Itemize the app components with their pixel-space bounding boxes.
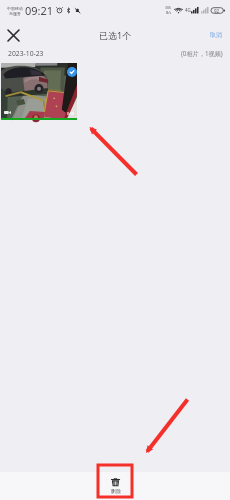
staticText: 4G [185, 7, 191, 13]
staticText: 删除 [111, 488, 121, 494]
staticText: 2023-10-23 [8, 49, 44, 58]
staticText: 306 [165, 5, 172, 10]
staticText: 0:18 [67, 111, 74, 116]
staticText: B/s [166, 10, 172, 15]
staticText: 中国移动 [7, 6, 23, 11]
button[interactable]: 删除 [101, 474, 130, 497]
staticText: 09:21 [25, 3, 54, 18]
staticText: 无服务 [9, 11, 21, 16]
staticText: (0相片，1视频) [181, 49, 223, 57]
staticText: 92 [214, 8, 220, 14]
button[interactable]: Video thumbnail [1, 63, 77, 120]
staticText: 取消 [210, 31, 222, 39]
button[interactable]: Close [0, 22, 26, 48]
staticText: 已选1个 [99, 29, 132, 41]
button[interactable]: 取消 [202, 26, 230, 44]
